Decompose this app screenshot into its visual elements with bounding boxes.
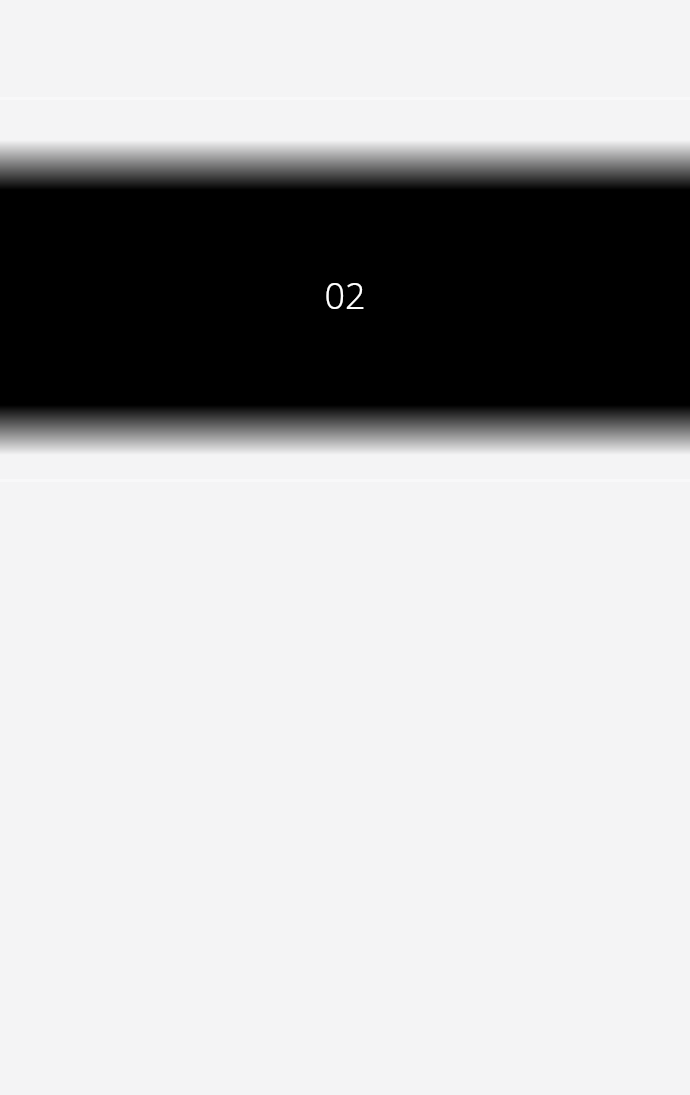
staticText: 02	[324, 271, 366, 320]
button[interactable]: 02	[0, 265, 690, 325]
button[interactable]: Hour 02	[0, 130, 690, 460]
